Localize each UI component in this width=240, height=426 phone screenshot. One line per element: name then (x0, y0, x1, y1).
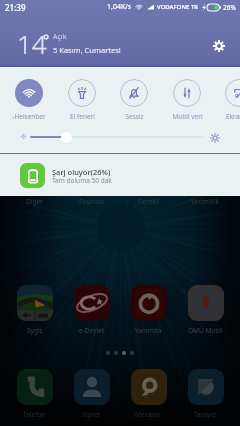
button[interactable]: e-Devlet (63, 285, 120, 335)
staticText: El feneri (70, 112, 95, 121)
staticText: 5 Kasım, Cumartesi (53, 45, 121, 55)
staticText: 1,04K/s (107, 2, 132, 12)
button[interactable]: Brightness (0, 128, 240, 146)
button[interactable]: Şarj oluyor(26%) Tam doluma 50 dak (0, 154, 240, 195)
button[interactable]: Ekran gö (213, 79, 240, 121)
button[interactable]: Kişiler (63, 369, 120, 419)
staticText: 14 (17, 26, 47, 61)
staticText: Sessiz (125, 112, 144, 121)
button[interactable]: Telefon (6, 369, 63, 419)
button[interactable]: Mobil veri (161, 79, 213, 121)
staticText: Yanımda (135, 326, 162, 335)
button[interactable]: -Heisenber (3, 79, 55, 121)
button[interactable]: Settings (209, 36, 229, 56)
staticText: Finansal (79, 197, 105, 206)
staticText: Tarayıcı (194, 410, 217, 419)
staticText: Telefon (23, 410, 46, 419)
staticText: Mobil veri (172, 112, 203, 121)
staticText: 21:39 (5, 2, 26, 13)
button[interactable]: Yanımda (120, 285, 177, 335)
staticText: Ekran gö (226, 112, 240, 121)
button[interactable]: OMÜ Mobil (177, 285, 234, 335)
button[interactable]: Tarayıcı (177, 369, 234, 419)
button[interactable]: Sessiz (108, 79, 160, 121)
staticText: Açık (53, 32, 67, 42)
staticText: Diğer (26, 197, 43, 206)
staticText: Tam doluma 50 dak (52, 176, 112, 185)
button[interactable]: El feneri (56, 79, 108, 121)
staticText: OMÜ Mobil (188, 326, 223, 335)
staticText: e-Devlet (79, 326, 105, 335)
staticText: Gerekli (138, 197, 160, 206)
button[interactable]: Mesajlar (120, 369, 177, 419)
staticText: Mesajlar (135, 410, 162, 419)
staticText: Sygic (27, 326, 43, 335)
staticText: VODAFONE TR (157, 3, 199, 11)
button[interactable]: Sygic (6, 285, 63, 335)
staticText: Kişiler (82, 410, 101, 419)
staticText: Şarj oluyor(26%) (52, 167, 111, 177)
staticText: -Heisenber (12, 112, 46, 121)
staticText: Verimlilik (191, 197, 220, 206)
staticText: 26% (223, 3, 236, 12)
